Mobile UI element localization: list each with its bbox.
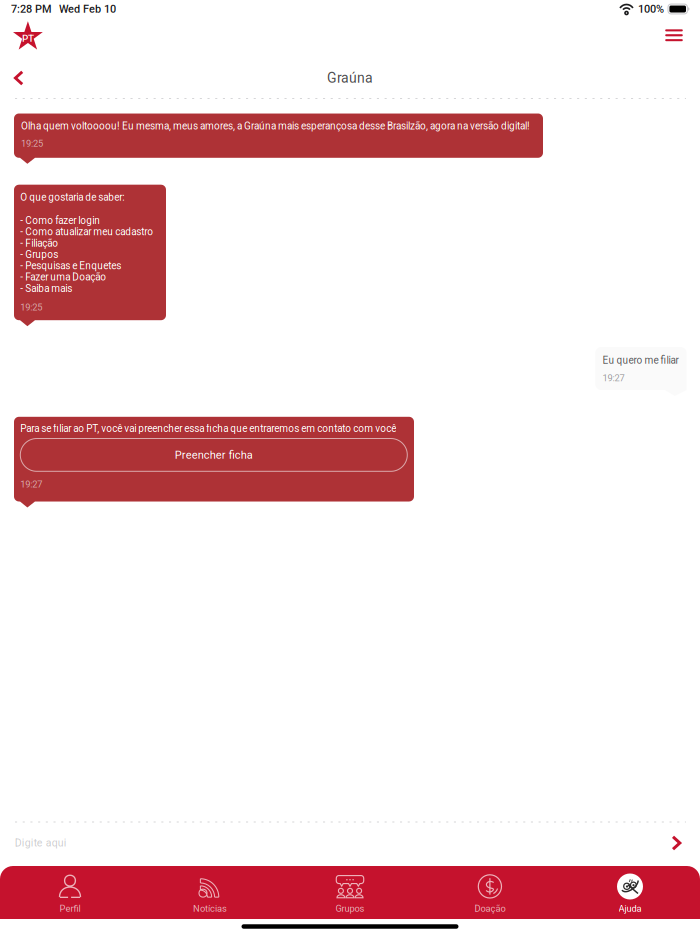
staticText: Ajuda <box>618 903 641 914</box>
staticText: Graúna <box>327 70 373 86</box>
button[interactable]: Preencher ficha <box>20 438 407 471</box>
staticText: Grupos <box>335 903 364 914</box>
staticText: Perfil <box>59 903 80 914</box>
staticText: 100% <box>638 3 664 15</box>
button[interactable]: Doação <box>420 866 560 919</box>
button[interactable]: Notícias <box>140 866 280 919</box>
staticText: 19:27 <box>20 479 42 490</box>
button[interactable]: Ajuda <box>560 866 700 919</box>
button[interactable]: Grupos <box>280 866 420 919</box>
staticText: Preencher ficha <box>175 448 253 461</box>
staticText: Olha quem voltoooou! Eu mesma, meus amor… <box>21 120 530 132</box>
staticText: - Grupos <box>20 249 58 260</box>
button[interactable]: Send <box>660 823 693 863</box>
staticText: - Fazer uma Doação <box>20 271 106 283</box>
staticText: - Saiba mais <box>20 283 72 294</box>
staticText: 7:28 PM <box>11 3 52 15</box>
staticText: Wed Feb 10 <box>59 3 116 15</box>
staticText: Eu quero me filiar <box>602 354 678 366</box>
staticText: - Pesquisas e Enquetes <box>20 260 121 272</box>
staticText: - Filiação <box>20 237 58 249</box>
button[interactable]: Back <box>0 58 38 98</box>
button[interactable]: Menu <box>653 18 700 58</box>
staticText: 19:25 <box>21 138 43 149</box>
staticText: 19:27 <box>602 372 624 383</box>
staticText: - Como fazer login <box>20 215 100 226</box>
staticText: O que gostaria de saber: <box>20 191 124 203</box>
staticText: Doação <box>474 903 505 914</box>
staticText: 19:25 <box>20 302 42 313</box>
button[interactable]: Perfil <box>0 866 140 919</box>
staticText: Para se filiar ao PT, você vai preencher… <box>20 423 396 434</box>
staticText: - Como atualizar meu cadastro <box>20 226 153 238</box>
staticText: PT <box>22 33 34 44</box>
staticText: Notícias <box>193 903 227 914</box>
staticText: Digite aqui <box>15 837 67 849</box>
button[interactable]: PT <box>0 18 50 58</box>
